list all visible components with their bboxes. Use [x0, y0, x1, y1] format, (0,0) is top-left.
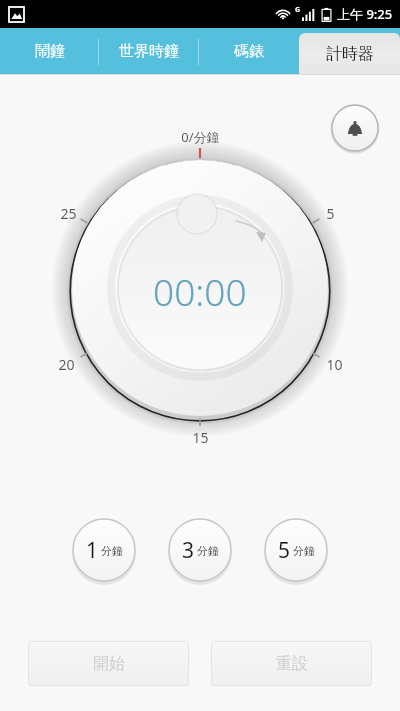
staticText: 25 [60, 204, 77, 222]
staticText: 分鐘 [197, 544, 219, 558]
staticText: 5 [278, 536, 291, 565]
button[interactable]: Alarm sound [330, 103, 380, 153]
button[interactable]: 重設 [211, 641, 372, 686]
button[interactable]: 3 [166, 516, 234, 584]
staticText: 00:00 [153, 266, 247, 310]
button[interactable]: 開始 [28, 641, 189, 686]
staticText: 分鐘 [293, 544, 315, 558]
button[interactable]: 1 [70, 516, 138, 584]
staticText: 5 [326, 204, 335, 222]
staticText: 世界時鐘 [119, 42, 179, 61]
button[interactable] [0, 75, 400, 711]
button[interactable]: 計時器 [299, 33, 400, 75]
staticText: 10 [326, 355, 343, 373]
button[interactable]: 碼錶 [199, 28, 299, 75]
button[interactable]: 5 [262, 516, 330, 584]
staticText: 鬧鐘 [35, 42, 65, 61]
staticText: 開始 [93, 654, 125, 674]
button[interactable]: 世界時鐘 [99, 28, 199, 75]
staticText: 碼錶 [234, 42, 264, 61]
staticText: G [295, 5, 301, 15]
button[interactable]: 鬧鐘 [0, 28, 99, 75]
staticText: 3 [182, 536, 195, 565]
staticText: 分鐘 [101, 544, 123, 558]
staticText: 0/分鐘 [181, 128, 220, 146]
staticText: 上午 9:25 [337, 5, 393, 23]
staticText: 重設 [276, 654, 308, 674]
staticText: 15 [192, 428, 209, 446]
staticText: 20 [58, 355, 75, 373]
staticText: 計時器 [326, 44, 374, 64]
staticText: 1 [86, 536, 99, 565]
